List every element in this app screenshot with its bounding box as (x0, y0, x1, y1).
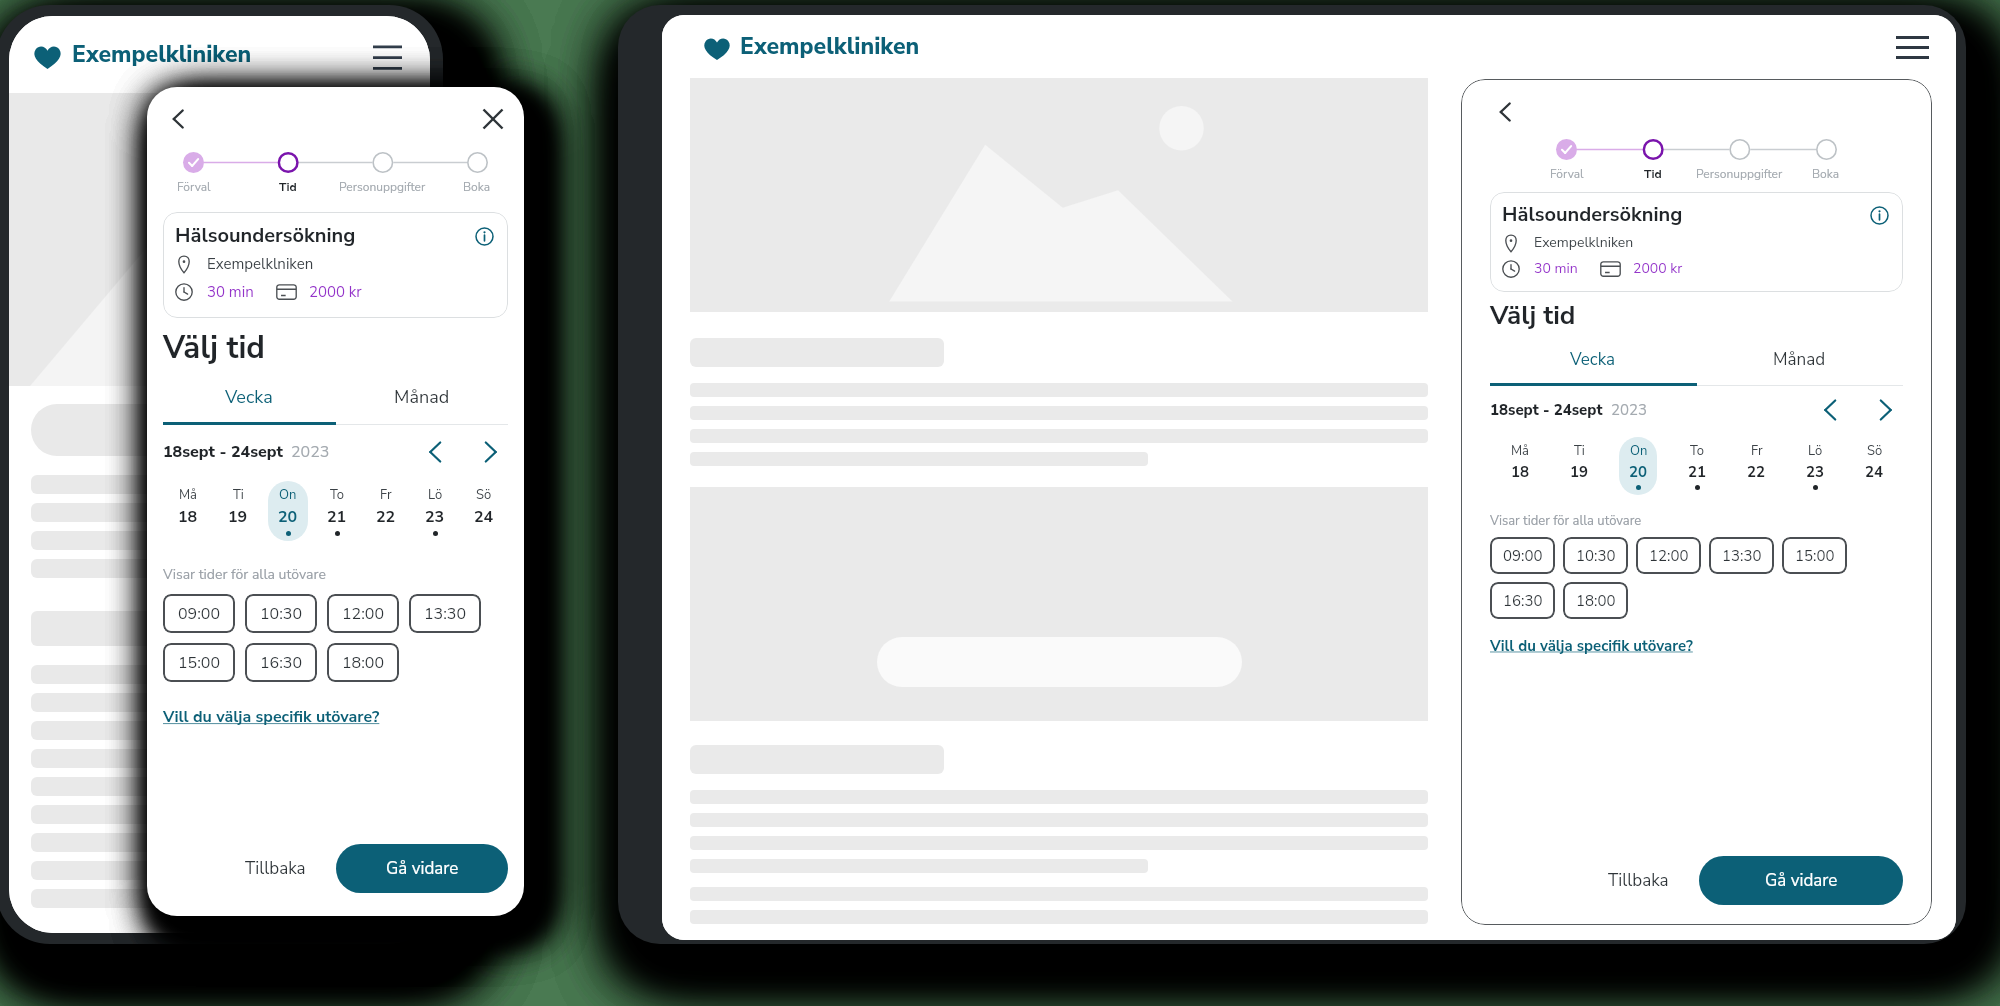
button[interactable]: 15:00 (1782, 537, 1847, 574)
staticText: Exempelklniken (207, 254, 314, 274)
button[interactable]: Next week (1869, 393, 1903, 427)
button[interactable]: Gå vidare (336, 844, 508, 893)
button[interactable]: Ti (218, 481, 258, 541)
button[interactable]: 09:00 (163, 594, 235, 633)
button[interactable]: Sö (1855, 437, 1893, 495)
button[interactable]: 18:00 (1563, 582, 1628, 619)
button[interactable]: To (1678, 437, 1716, 495)
staticText: Tid (279, 179, 297, 195)
button[interactable]: 16:30 (1490, 582, 1555, 619)
staticText: Fr (1751, 442, 1763, 460)
button[interactable]: Back (163, 104, 193, 134)
staticText: 19 (228, 506, 248, 528)
button[interactable]: Menu (1894, 32, 1930, 62)
staticText: 2023 (1611, 400, 1648, 420)
button[interactable]: 13:30 (1709, 537, 1774, 574)
button[interactable]: Previous week (418, 435, 452, 469)
staticText: 22 (1747, 462, 1766, 482)
button[interactable]: Tillbaka (229, 845, 322, 892)
staticText: Boka (1812, 166, 1840, 182)
button[interactable]: Tillbaka (1592, 857, 1685, 904)
button[interactable]: 10:30 (1563, 537, 1628, 574)
staticText: 24 (474, 506, 494, 528)
staticText: 24 (1865, 462, 1884, 482)
staticText: 2000 kr (1633, 259, 1683, 278)
staticText: 15:00 (178, 652, 221, 674)
button[interactable]: Lö (1796, 437, 1834, 495)
staticText: Boka (463, 179, 491, 195)
button[interactable]: Fr (366, 481, 406, 541)
button[interactable]: 18:00 (327, 643, 399, 682)
button[interactable]: To (317, 481, 357, 541)
button[interactable]: 16:30 (245, 643, 317, 682)
staticText: 13:30 (1722, 546, 1762, 566)
staticText: Må (179, 486, 198, 504)
button[interactable]: On (268, 481, 308, 541)
button[interactable]: 12:00 (1636, 537, 1701, 574)
button[interactable]: 15:00 (163, 643, 235, 682)
button[interactable]: Må (1501, 437, 1539, 495)
staticText: Hälsoundersökning (175, 222, 356, 249)
button[interactable]: Lö (415, 481, 455, 541)
staticText: 30 min (207, 282, 254, 302)
staticText: 2023 (291, 441, 330, 463)
button[interactable]: Next week (474, 435, 508, 469)
button[interactable]: Close (478, 104, 508, 134)
button[interactable]: 12:00 (327, 594, 399, 633)
button[interactable]: Vecka (163, 381, 335, 414)
staticText: Förval (177, 179, 211, 195)
button[interactable]: Back (1490, 97, 1520, 127)
staticText: 23 (425, 506, 445, 528)
staticText: Välj tid (163, 327, 265, 369)
button[interactable]: 09:00 (1490, 537, 1555, 574)
staticText: Visar tider för alla utövare (1490, 512, 1642, 530)
staticText: Välj tid (1490, 298, 1576, 333)
staticText: 18sept - 24sept (163, 441, 283, 463)
button[interactable]: Vecka (1490, 344, 1696, 375)
staticText: 16:30 (1503, 591, 1543, 611)
button[interactable]: Ti (1560, 437, 1598, 495)
staticText: Ti (233, 486, 244, 504)
button[interactable]: Info (472, 224, 496, 248)
staticText: Tillbaka (1608, 869, 1669, 892)
staticText: 20 (1629, 462, 1648, 482)
staticText: Tid (1644, 166, 1662, 182)
staticText: Lö (428, 486, 443, 504)
staticText: Fr (380, 486, 392, 504)
staticText: 23 (1806, 462, 1825, 482)
button[interactable]: Vill du välja specifik utövare? (163, 706, 380, 728)
staticText: 10:30 (260, 603, 303, 625)
staticText: To (330, 486, 345, 504)
staticText: 18sept - 24sept (1490, 400, 1603, 420)
staticText: 18 (1511, 462, 1530, 482)
staticText: Gå vidare (386, 857, 459, 880)
staticText: 09:00 (1503, 546, 1543, 566)
staticText: On (1630, 442, 1648, 460)
button[interactable]: Månad (1696, 344, 1903, 375)
button[interactable]: On (1619, 437, 1657, 495)
staticText: 18:00 (342, 652, 385, 674)
button[interactable]: Sö (464, 481, 504, 541)
button[interactable]: 13:30 (409, 594, 481, 633)
button[interactable]: Fr (1737, 437, 1775, 495)
staticText: Förval (1550, 166, 1584, 182)
button[interactable]: Gå vidare (1699, 856, 1903, 905)
button[interactable]: Månad (335, 381, 508, 414)
staticText: 16:30 (260, 652, 303, 674)
staticText: Exempelkliniken (740, 31, 920, 62)
button[interactable]: Må (168, 481, 208, 541)
button[interactable]: 10:30 (245, 594, 317, 633)
staticText: 18:00 (1576, 591, 1616, 611)
staticText: 2000 kr (309, 282, 362, 302)
staticText: Visar tider för alla utövare (163, 565, 326, 584)
staticText: To (1690, 442, 1705, 460)
button[interactable]: Previous week (1813, 393, 1847, 427)
staticText: Exempelklniken (1534, 233, 1634, 252)
staticText: 12:00 (342, 603, 385, 625)
button[interactable]: Menu (370, 41, 404, 69)
staticText: On (279, 486, 297, 504)
button[interactable]: Vill du välja specifik utövare? (1490, 636, 1693, 656)
staticText: 12:00 (1649, 546, 1689, 566)
button[interactable]: Info (1867, 203, 1891, 227)
staticText: 09:00 (178, 603, 221, 625)
